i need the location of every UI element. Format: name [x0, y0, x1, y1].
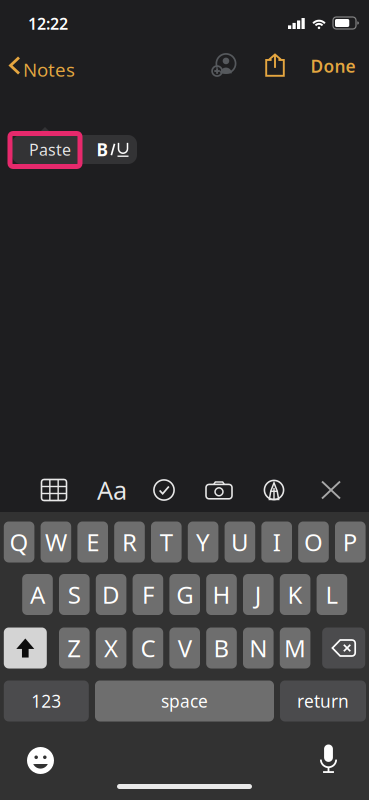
- button[interactable]: G: [169, 574, 200, 615]
- staticText: Done: [310, 54, 355, 77]
- button[interactable]: Hide keyboard: [309, 468, 353, 512]
- staticText: A: [30, 579, 45, 610]
- button[interactable]: U: [225, 521, 255, 562]
- staticText: space: [161, 689, 208, 712]
- staticText: Z: [67, 632, 81, 664]
- staticText: L: [325, 579, 338, 610]
- staticText: K: [288, 579, 303, 610]
- button[interactable]: Table: [32, 468, 76, 512]
- button[interactable]: W: [41, 521, 71, 562]
- button[interactable]: Z: [59, 627, 90, 668]
- button[interactable]: Delete: [322, 627, 365, 668]
- button[interactable]: B: [206, 627, 237, 668]
- button[interactable]: C: [133, 627, 163, 668]
- button[interactable]: J: [243, 574, 274, 615]
- staticText: Y: [196, 526, 210, 558]
- button[interactable]: Camera: [197, 468, 241, 512]
- staticText: U: [231, 526, 249, 558]
- staticText: R: [122, 526, 137, 558]
- button[interactable]: T: [151, 521, 182, 562]
- button[interactable]: Dictate: [306, 737, 350, 781]
- button[interactable]: P: [335, 521, 366, 562]
- staticText: T: [160, 526, 173, 558]
- staticText: S: [68, 579, 81, 610]
- staticText: Notes: [23, 57, 75, 82]
- button[interactable]: Q: [4, 521, 34, 562]
- button[interactable]: V: [169, 627, 200, 668]
- button[interactable]: R: [114, 521, 145, 562]
- staticText: O: [304, 526, 323, 558]
- button[interactable]: Y: [188, 521, 218, 562]
- button[interactable]: E: [77, 521, 108, 562]
- staticText: return: [297, 689, 349, 712]
- button[interactable]: I: [261, 521, 292, 562]
- button[interactable]: A: [22, 574, 53, 615]
- button[interactable]: Done: [304, 48, 362, 84]
- button[interactable]: Paste: [12, 135, 88, 164]
- staticText: F: [142, 579, 154, 610]
- button[interactable]: Text format: [88, 135, 137, 164]
- staticText: B: [213, 632, 229, 664]
- staticText: W: [45, 526, 67, 558]
- button[interactable]: K: [280, 574, 310, 615]
- button[interactable]: N: [243, 627, 274, 668]
- button[interactable]: space: [95, 680, 274, 721]
- button[interactable]: return: [280, 680, 366, 721]
- staticText: D: [102, 579, 120, 610]
- staticText: Q: [10, 526, 29, 558]
- button[interactable]: X: [96, 627, 126, 668]
- button[interactable]: Shift: [4, 627, 47, 668]
- staticText: Aa: [97, 473, 127, 507]
- staticText: 123: [31, 689, 61, 712]
- staticText: X: [104, 632, 118, 664]
- staticText: Paste: [29, 139, 71, 160]
- button[interactable]: D: [96, 574, 126, 615]
- staticText: P: [343, 526, 358, 558]
- button[interactable]: F: [133, 574, 163, 615]
- button[interactable]: Markup: [252, 468, 296, 512]
- staticText: N: [249, 632, 267, 664]
- staticText: I: [273, 526, 281, 558]
- button[interactable]: Format: [89, 468, 135, 512]
- button[interactable]: Share: [254, 44, 296, 86]
- button[interactable]: M: [280, 627, 310, 668]
- button[interactable]: Emoji: [18, 738, 62, 782]
- button[interactable]: Add people: [203, 44, 245, 86]
- staticText: M: [284, 632, 306, 664]
- button[interactable]: 123: [4, 680, 89, 721]
- button[interactable]: H: [206, 574, 237, 615]
- staticText: J: [255, 579, 262, 610]
- staticText: E: [86, 526, 99, 558]
- staticText: 12:22: [28, 13, 68, 34]
- staticText: C: [140, 632, 155, 664]
- staticText: B: [96, 138, 108, 161]
- button[interactable]: S: [59, 574, 90, 615]
- staticText: H: [212, 579, 230, 610]
- button[interactable]: Notes: [0, 46, 80, 86]
- button[interactable]: O: [298, 521, 329, 562]
- staticText: G: [176, 579, 193, 610]
- staticText: V: [178, 632, 192, 664]
- button[interactable]: Checklist: [142, 468, 186, 512]
- button[interactable]: L: [317, 574, 347, 615]
